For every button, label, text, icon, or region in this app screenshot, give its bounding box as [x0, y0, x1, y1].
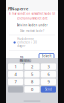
staticText: Vi har sendt en sekssifret kode til	[8, 12, 55, 15]
staticText: telefonnummeret ditt	[16, 17, 47, 20]
staticText: Husk denne enheten i 30 dager	[17, 37, 37, 48]
button[interactable]: Send	[41, 86, 56, 93]
staticText: 7	[15, 79, 17, 84]
staticText: Bekreft	[41, 54, 51, 58]
button[interactable]: 4	[8, 71, 23, 77]
staticText: PIN-sperre	[8, 6, 28, 11]
staticText: 9	[47, 79, 49, 84]
button[interactable]: 5	[24, 71, 40, 77]
staticText: 5	[31, 71, 33, 77]
button[interactable]: 1	[8, 63, 23, 70]
staticText: 3	[47, 64, 49, 69]
staticText: 4	[15, 71, 17, 77]
button[interactable]: Fra Meldinger	[19, 59, 31, 62]
staticText: Fra Meldinger	[20, 55, 31, 66]
button[interactable]: 0	[24, 86, 40, 93]
button[interactable]: 7	[8, 79, 23, 85]
button[interactable]: Husk denne enheten i 30 dager	[6, 37, 58, 48]
button[interactable]: 8	[24, 79, 40, 85]
button[interactable]	[8, 86, 23, 93]
staticText: 8	[31, 79, 33, 84]
button[interactable]: 9	[41, 79, 56, 85]
button[interactable]: Bekreft	[39, 53, 54, 59]
staticText: Skriv inn koden under	[16, 23, 47, 27]
staticText: Send	[45, 88, 52, 91]
button[interactable]: 3	[41, 63, 56, 70]
staticText: 0	[31, 87, 33, 92]
staticText: 1	[15, 64, 17, 69]
staticText: Ikke mottatt kode?	[20, 29, 44, 33]
button[interactable]: 6	[41, 71, 56, 77]
staticText: 6	[47, 71, 49, 77]
staticText: 2	[31, 64, 33, 69]
button[interactable]: 2	[24, 63, 40, 70]
